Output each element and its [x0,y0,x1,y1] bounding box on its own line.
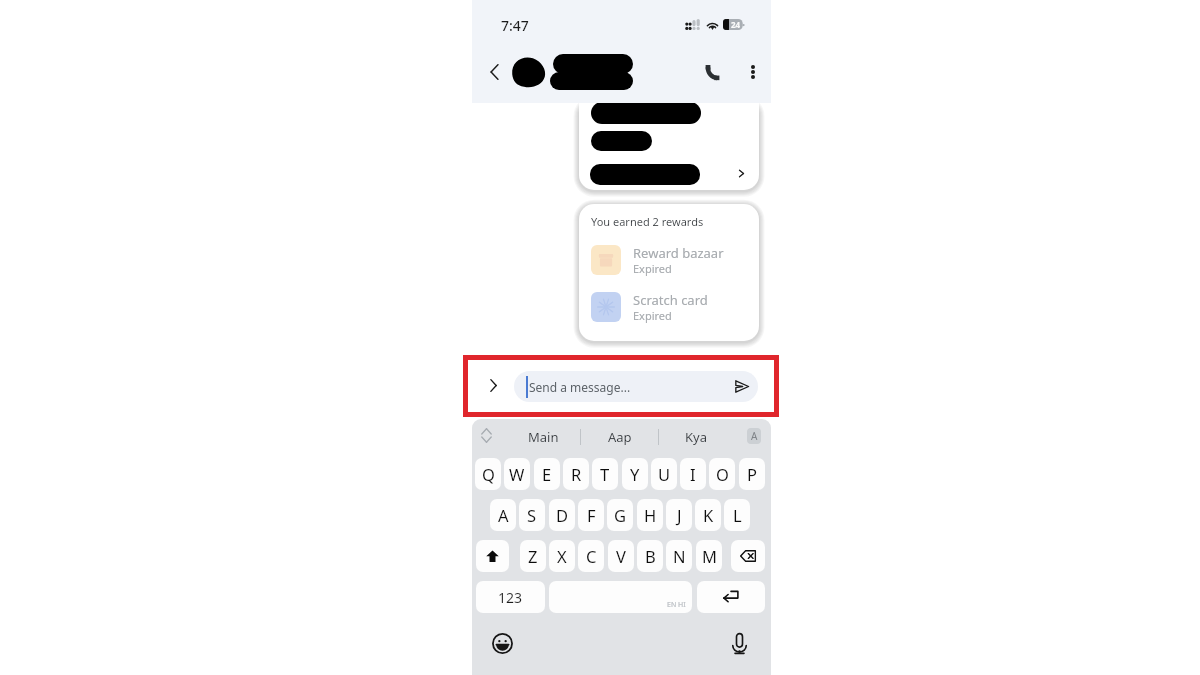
button[interactable]: V [608,540,634,572]
button[interactable]: Voice input [725,629,753,657]
button[interactable]: I [680,458,706,490]
staticText: B [645,545,656,567]
button[interactable]: S [519,499,545,531]
staticText: T [600,463,610,485]
button[interactable]: T [592,458,618,490]
staticText: Send a message... [529,379,631,395]
button[interactable]: A [490,499,516,531]
button[interactable]: Back [477,55,511,89]
button[interactable] [579,100,759,190]
button[interactable]: W [504,458,530,490]
button[interactable]: J [666,499,692,531]
button[interactable]: Shift [476,540,509,572]
button[interactable]: R [563,458,589,490]
button[interactable]: Emoji [488,629,516,657]
button[interactable]: O [709,458,735,490]
staticText: 123 [498,588,523,607]
staticText: Q [482,463,495,485]
staticText: You earned 2 rewards [591,214,704,229]
button[interactable]: Expand suggestions [475,424,498,447]
button[interactable]: A [747,428,761,444]
button[interactable]: G [607,499,633,531]
staticText: Y [630,463,640,485]
staticText: 7:47 [501,16,529,35]
staticText: H [644,504,657,526]
staticText: K [703,504,714,526]
staticText: Main [528,428,559,446]
staticText: W [509,463,525,485]
staticText: EN HI [667,600,686,610]
staticText: R [571,463,582,485]
button[interactable]: Expand [477,369,509,401]
staticText: C [586,545,597,567]
staticText: L [733,504,742,526]
staticText: N [673,545,686,567]
staticText: P [747,463,757,485]
staticText: F [587,504,596,526]
staticText: X [557,545,567,567]
staticText: O [716,463,729,485]
button[interactable]: C [578,540,604,572]
button[interactable]: Backspace [731,540,765,572]
staticText: S [527,504,537,526]
button[interactable]: X [549,540,575,572]
staticText: M [702,545,717,567]
button[interactable]: Y [622,458,648,490]
button[interactable]: Kya [666,419,726,455]
button[interactable]: U [651,458,677,490]
staticText: 24 [731,19,741,30]
button[interactable]: 123 [476,581,545,613]
staticText: Expired [633,308,672,323]
button[interactable]: You earned 2 rewards [579,204,759,341]
staticText: Expired [633,261,672,276]
button[interactable]: E [534,458,560,490]
button[interactable]: Z [520,540,546,572]
button[interactable]: K [695,499,721,531]
staticText: D [556,504,569,526]
staticText: Z [528,545,538,567]
staticText: A [751,429,758,443]
button[interactable]: Send a message... [514,371,758,402]
button[interactable]: L [724,499,750,531]
button[interactable]: F [578,499,604,531]
staticText: Scratch card [633,291,708,309]
staticText: G [614,504,627,526]
button[interactable]: M [696,540,722,572]
button[interactable]: D [549,499,575,531]
staticText: I [690,463,696,485]
button[interactable]: N [666,540,692,572]
other: Send [735,380,749,393]
staticText: V [616,545,626,567]
button[interactable]: H [637,499,663,531]
staticText: J [677,504,682,526]
staticText: Aap [608,428,632,446]
button[interactable]: Call [695,55,729,89]
button[interactable]: P [739,458,765,490]
button[interactable]: Main [513,419,573,455]
staticText: U [658,463,671,485]
button[interactable]: More options [736,55,770,89]
staticText: Reward bazaar [633,244,724,262]
button[interactable]: Q [475,458,501,490]
staticText: E [542,463,552,485]
button[interactable]: Space [549,581,692,613]
button[interactable]: Enter [697,581,765,613]
button[interactable]: Aap [590,419,650,455]
button[interactable]: B [637,540,663,572]
staticText: Kya [685,428,707,446]
staticText: A [498,504,509,526]
